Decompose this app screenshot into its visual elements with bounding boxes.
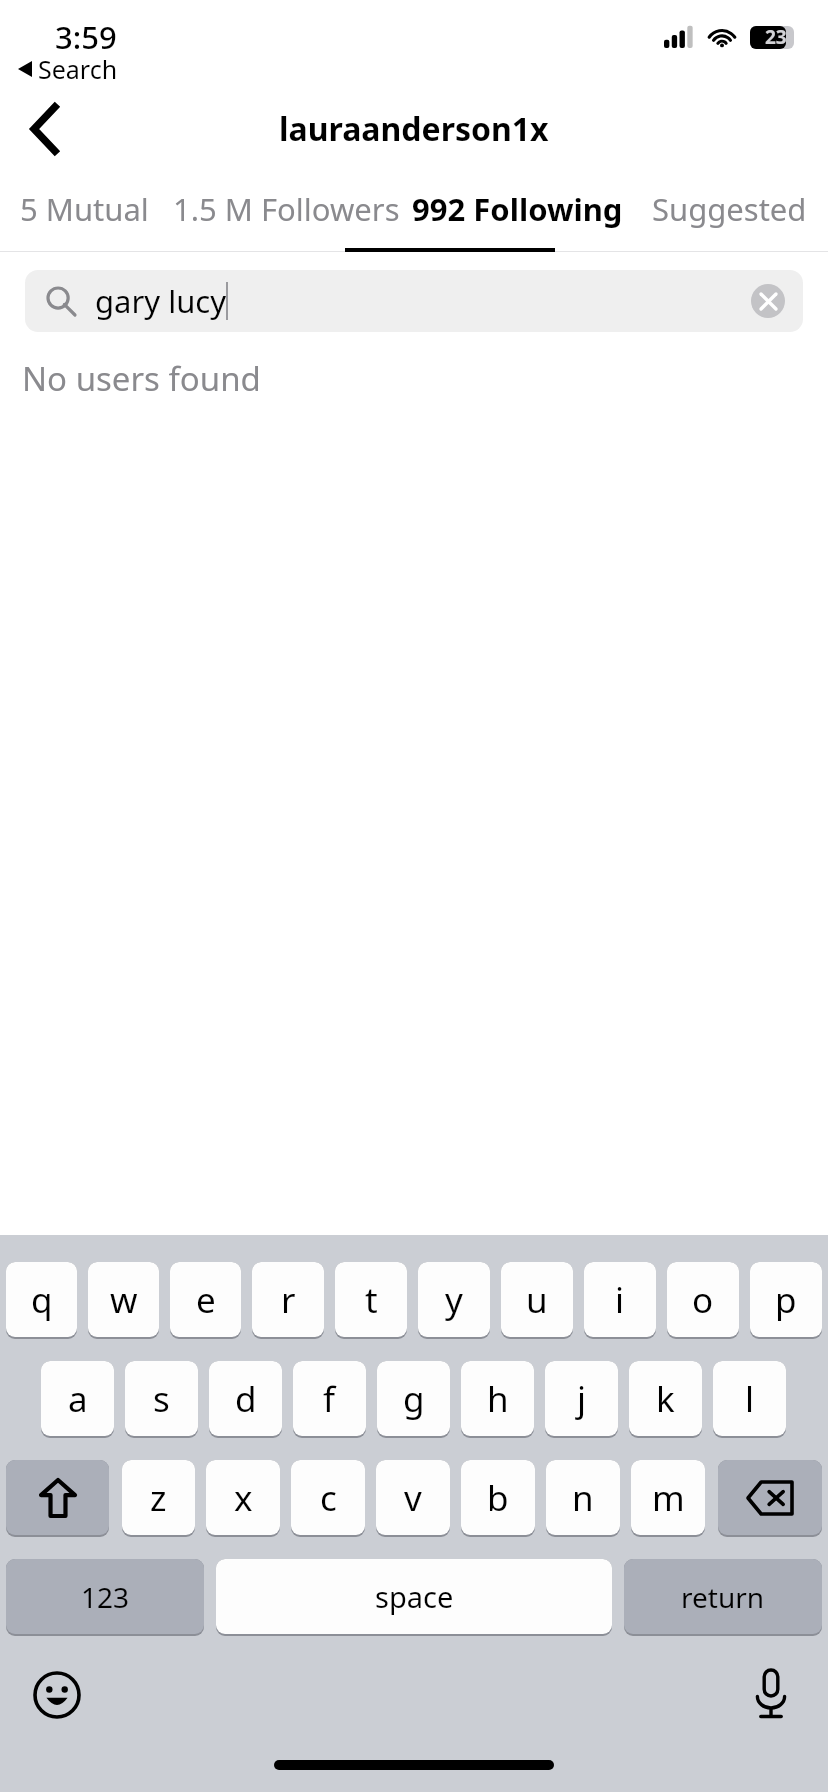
button[interactable]: k — [629, 1361, 702, 1436]
staticText: Suggested — [652, 188, 807, 230]
button[interactable]: u — [501, 1262, 573, 1337]
staticText: space — [375, 1577, 454, 1616]
button[interactable]: j — [545, 1361, 618, 1436]
button[interactable]: Suggested — [630, 168, 828, 250]
button[interactable]: Dictation — [740, 1664, 802, 1726]
staticText: n — [572, 1474, 594, 1522]
button[interactable]: e — [170, 1262, 241, 1337]
button[interactable]: gary lucy — [25, 270, 803, 332]
button[interactable]: Back — [14, 98, 76, 160]
button[interactable]: space — [216, 1559, 612, 1634]
button[interactable]: Emoji — [26, 1664, 88, 1726]
staticText: lauraanderson1x — [279, 107, 549, 151]
staticText: f — [323, 1375, 336, 1423]
button[interactable]: 123 — [6, 1559, 204, 1634]
staticText: a — [68, 1375, 88, 1423]
staticText: 1.5 M Followers — [173, 188, 400, 230]
staticText: 992 Following — [412, 188, 623, 230]
staticText: d — [235, 1375, 257, 1423]
staticText: h — [487, 1375, 509, 1423]
button[interactable]: i — [584, 1262, 656, 1337]
button[interactable]: s — [125, 1361, 198, 1436]
button[interactable]: a — [41, 1361, 114, 1436]
staticText: 5 Mutual — [20, 188, 149, 230]
staticText: p — [775, 1276, 797, 1324]
staticText: m — [652, 1474, 685, 1522]
staticText: 123 — [81, 1578, 130, 1616]
button[interactable]: Shift — [6, 1460, 109, 1535]
button[interactable]: t — [335, 1262, 407, 1337]
button[interactable]: 5 Mutual — [0, 168, 169, 250]
button[interactable]: n — [546, 1460, 620, 1535]
button[interactable]: g — [377, 1361, 450, 1436]
staticText: y — [445, 1276, 463, 1324]
staticText: z — [150, 1474, 167, 1522]
staticText: 23 — [765, 24, 787, 50]
staticText: return — [681, 1578, 765, 1616]
button[interactable]: Search — [18, 52, 118, 86]
button[interactable]: d — [209, 1361, 282, 1436]
button[interactable]: r — [252, 1262, 324, 1337]
button[interactable]: c — [291, 1460, 365, 1535]
staticText: s — [153, 1375, 170, 1423]
button[interactable]: m — [631, 1460, 705, 1535]
button[interactable]: Clear text — [751, 284, 785, 318]
button[interactable]: o — [667, 1262, 739, 1337]
button[interactable]: w — [88, 1262, 159, 1337]
staticText: w — [110, 1276, 138, 1324]
button[interactable]: p — [750, 1262, 822, 1337]
button[interactable]: q — [6, 1262, 77, 1337]
staticText: v — [404, 1474, 422, 1522]
button[interactable]: y — [418, 1262, 490, 1337]
button[interactable]: b — [461, 1460, 535, 1535]
staticText: 3:59 — [55, 16, 117, 58]
button[interactable]: z — [122, 1460, 195, 1535]
staticText: t — [365, 1276, 378, 1324]
staticText: b — [487, 1474, 509, 1522]
button[interactable]: v — [376, 1460, 450, 1535]
staticText: k — [656, 1375, 675, 1423]
staticText: No users found — [22, 356, 261, 401]
button[interactable]: f — [293, 1361, 366, 1436]
button[interactable]: Backspace — [718, 1460, 822, 1535]
staticText: q — [31, 1276, 53, 1324]
button[interactable]: h — [461, 1361, 534, 1436]
staticText: Search — [38, 52, 118, 86]
staticText: g — [403, 1375, 425, 1423]
staticText: x — [234, 1474, 253, 1522]
button[interactable]: l — [713, 1361, 786, 1436]
button[interactable]: 992 Following — [404, 168, 630, 250]
staticText: i — [615, 1276, 625, 1324]
button[interactable]: return — [624, 1559, 822, 1634]
staticText: gary lucy — [95, 280, 226, 322]
staticText: e — [196, 1276, 216, 1324]
staticText: c — [320, 1474, 337, 1522]
button[interactable]: 1.5 M Followers — [169, 168, 404, 250]
staticText: j — [577, 1375, 587, 1423]
staticText: r — [281, 1276, 296, 1324]
staticText: u — [526, 1276, 548, 1324]
staticText: l — [745, 1375, 755, 1423]
button[interactable]: x — [206, 1460, 280, 1535]
staticText: o — [692, 1276, 714, 1324]
